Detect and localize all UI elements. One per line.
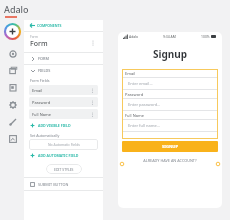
staticText: SUBMIT BUTTON	[38, 182, 69, 187]
button[interactable]: Add	[4, 23, 21, 40]
staticText: No Automatic Fields	[48, 142, 80, 147]
button[interactable]: Analytics	[4, 130, 21, 147]
button[interactable]: Enter password...	[122, 99, 218, 110]
staticText: ALREADY HAVE AN ACCOUNT?	[143, 158, 197, 163]
staticText: Enter email...	[128, 81, 153, 86]
staticText: Password	[32, 100, 90, 105]
staticText: FORM	[38, 56, 49, 61]
staticText: Form	[30, 35, 38, 39]
staticText: Signup	[153, 47, 188, 61]
staticText: SIGNUP	[162, 144, 179, 150]
staticText: Form Fields	[30, 78, 50, 83]
button[interactable]: ADD AUTOMATIC FIELD	[24, 150, 103, 161]
button[interactable]: FIELDS	[24, 65, 103, 76]
staticText: EDIT STYLES	[54, 167, 74, 172]
staticText: FIELDS	[38, 68, 51, 73]
staticText: ADD AUTOMATIC FIELD	[38, 153, 79, 158]
button[interactable]: FORM	[24, 53, 103, 64]
button[interactable]: ADD VISIBLE FIELD	[24, 120, 103, 131]
staticText: Enter full name...	[128, 123, 160, 128]
button[interactable]: Enter email...	[122, 78, 218, 89]
staticText: 9:34 AM	[163, 34, 176, 39]
button[interactable]: Screens	[4, 62, 21, 79]
button[interactable]: Components	[4, 45, 21, 62]
button[interactable]: ALREADY HAVE AN ACCOUNT?	[118, 158, 222, 163]
staticText: Set Automatically	[30, 133, 60, 138]
staticText: 100%	[201, 34, 210, 39]
button[interactable]: Email	[29, 85, 98, 95]
staticText: COMPONENTS	[37, 23, 62, 28]
button[interactable]: SUBMIT BUTTON	[24, 178, 103, 190]
button[interactable]: No Automatic Fields	[29, 139, 98, 150]
staticText: Full Name	[125, 113, 144, 118]
button[interactable]: Enter full name...	[122, 120, 218, 131]
staticText: Password	[125, 92, 144, 97]
staticText: Enter password...	[128, 102, 161, 107]
button[interactable]: Design	[4, 113, 21, 130]
staticText: Adalo	[129, 34, 139, 39]
button[interactable]: More options	[88, 38, 97, 47]
staticText: Adalo	[4, 3, 29, 15]
staticText: Email	[125, 71, 136, 76]
button[interactable]: COMPONENTS	[24, 20, 103, 31]
button[interactable]: Database	[4, 79, 21, 96]
staticText: Full Name	[32, 112, 90, 117]
button[interactable]: Full Name	[29, 109, 98, 119]
staticText: ADD VISIBLE FIELD	[38, 123, 71, 128]
staticText: Email	[32, 88, 90, 93]
button[interactable]: Settings	[4, 96, 21, 113]
staticText: Form	[30, 39, 48, 49]
button[interactable]: EDIT STYLES	[46, 164, 82, 174]
button[interactable]: SIGNUP	[122, 141, 218, 152]
button[interactable]: Password	[29, 97, 98, 107]
